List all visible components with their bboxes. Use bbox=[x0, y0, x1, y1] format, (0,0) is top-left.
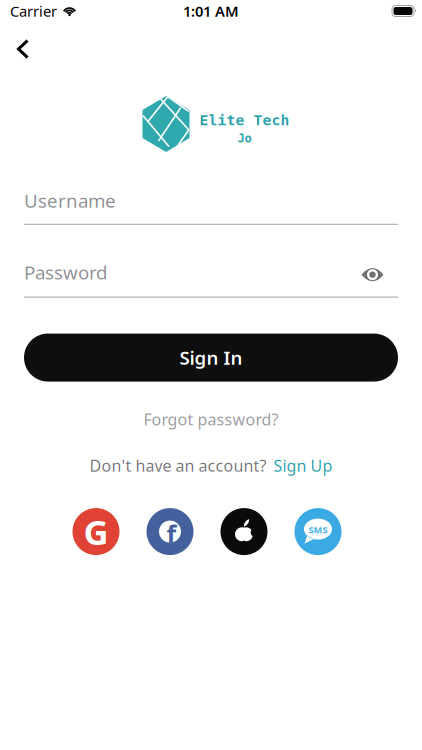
button[interactable] bbox=[17, 39, 29, 59]
staticText: Forgot password? bbox=[143, 409, 278, 430]
button[interactable]: Password bbox=[0, 260, 422, 298]
button[interactable] bbox=[220, 508, 267, 555]
staticText: Jo bbox=[237, 131, 251, 145]
staticText: G bbox=[83, 509, 108, 555]
staticText: Sign In bbox=[179, 345, 242, 370]
button[interactable]: Forgot password? bbox=[143, 409, 278, 430]
button[interactable] bbox=[361, 267, 384, 282]
staticText: Don't have an account? bbox=[89, 455, 266, 476]
button[interactable]: Sign Up bbox=[273, 455, 332, 476]
staticText: f bbox=[166, 517, 176, 550]
button[interactable]: f bbox=[146, 508, 193, 555]
staticText: SMS bbox=[308, 523, 327, 536]
button[interactable]: Username bbox=[0, 188, 422, 225]
button[interactable]: G bbox=[72, 508, 119, 555]
staticText: 1:01 AM bbox=[183, 1, 239, 21]
staticText: Password bbox=[24, 260, 107, 285]
staticText: Sign Up bbox=[273, 455, 332, 476]
staticText: Carrier bbox=[10, 1, 57, 21]
button[interactable]: SMS bbox=[294, 508, 341, 555]
staticText: Elite Tech bbox=[199, 112, 289, 128]
button[interactable]: Sign In bbox=[0, 334, 422, 382]
staticText: Username bbox=[24, 188, 116, 213]
